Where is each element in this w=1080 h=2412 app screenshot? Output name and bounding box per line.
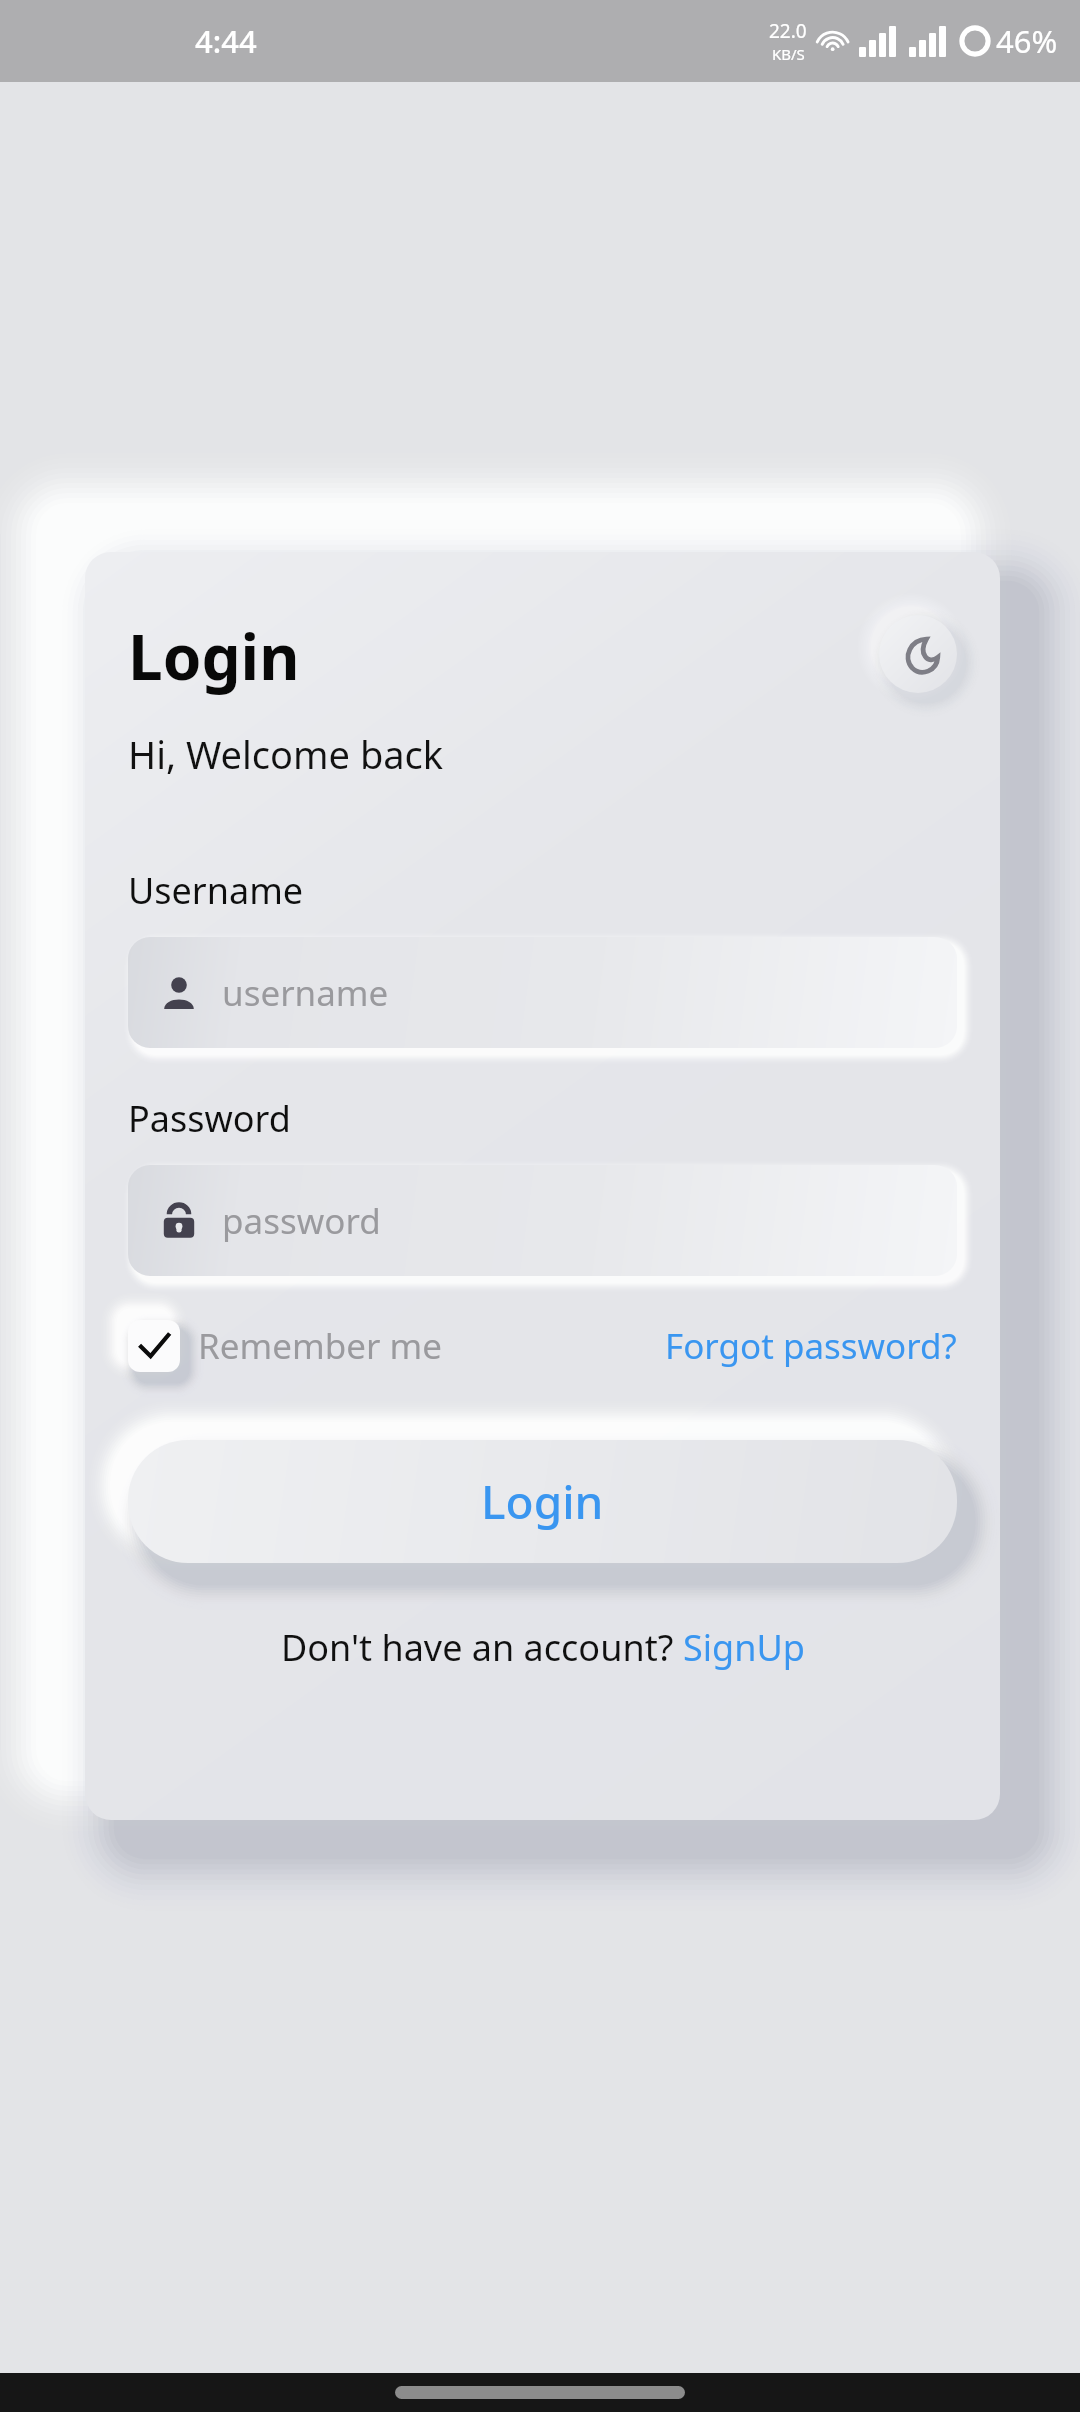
- button[interactable]: SignUp: [683, 1623, 805, 1672]
- staticText: Remember me: [198, 1322, 442, 1370]
- button[interactable]: Remember me: [128, 1320, 442, 1372]
- staticText: SignUp: [683, 1623, 805, 1672]
- button[interactable]: username: [128, 937, 957, 1048]
- button[interactable]: Login: [128, 1440, 957, 1563]
- staticText: KB/S: [772, 44, 805, 64]
- staticText: 46%: [996, 20, 1058, 62]
- button[interactable]: Toggle dark mode: [879, 615, 957, 693]
- staticText: Forgot password?: [665, 1322, 957, 1370]
- staticText: password: [222, 1197, 381, 1245]
- button[interactable]: password: [128, 1165, 957, 1276]
- button[interactable]: Forgot password?: [665, 1322, 957, 1370]
- staticText: Password: [128, 1094, 291, 1143]
- staticText: Don't have an account?: [281, 1623, 683, 1672]
- staticText: 22.0: [769, 18, 807, 44]
- staticText: Hi, Welcome back: [128, 728, 444, 780]
- staticText: Login: [481, 1470, 604, 1533]
- staticText: Login: [128, 614, 300, 698]
- staticText: username: [222, 969, 389, 1017]
- staticText: 4:44: [195, 20, 257, 62]
- staticText: Username: [128, 866, 304, 915]
